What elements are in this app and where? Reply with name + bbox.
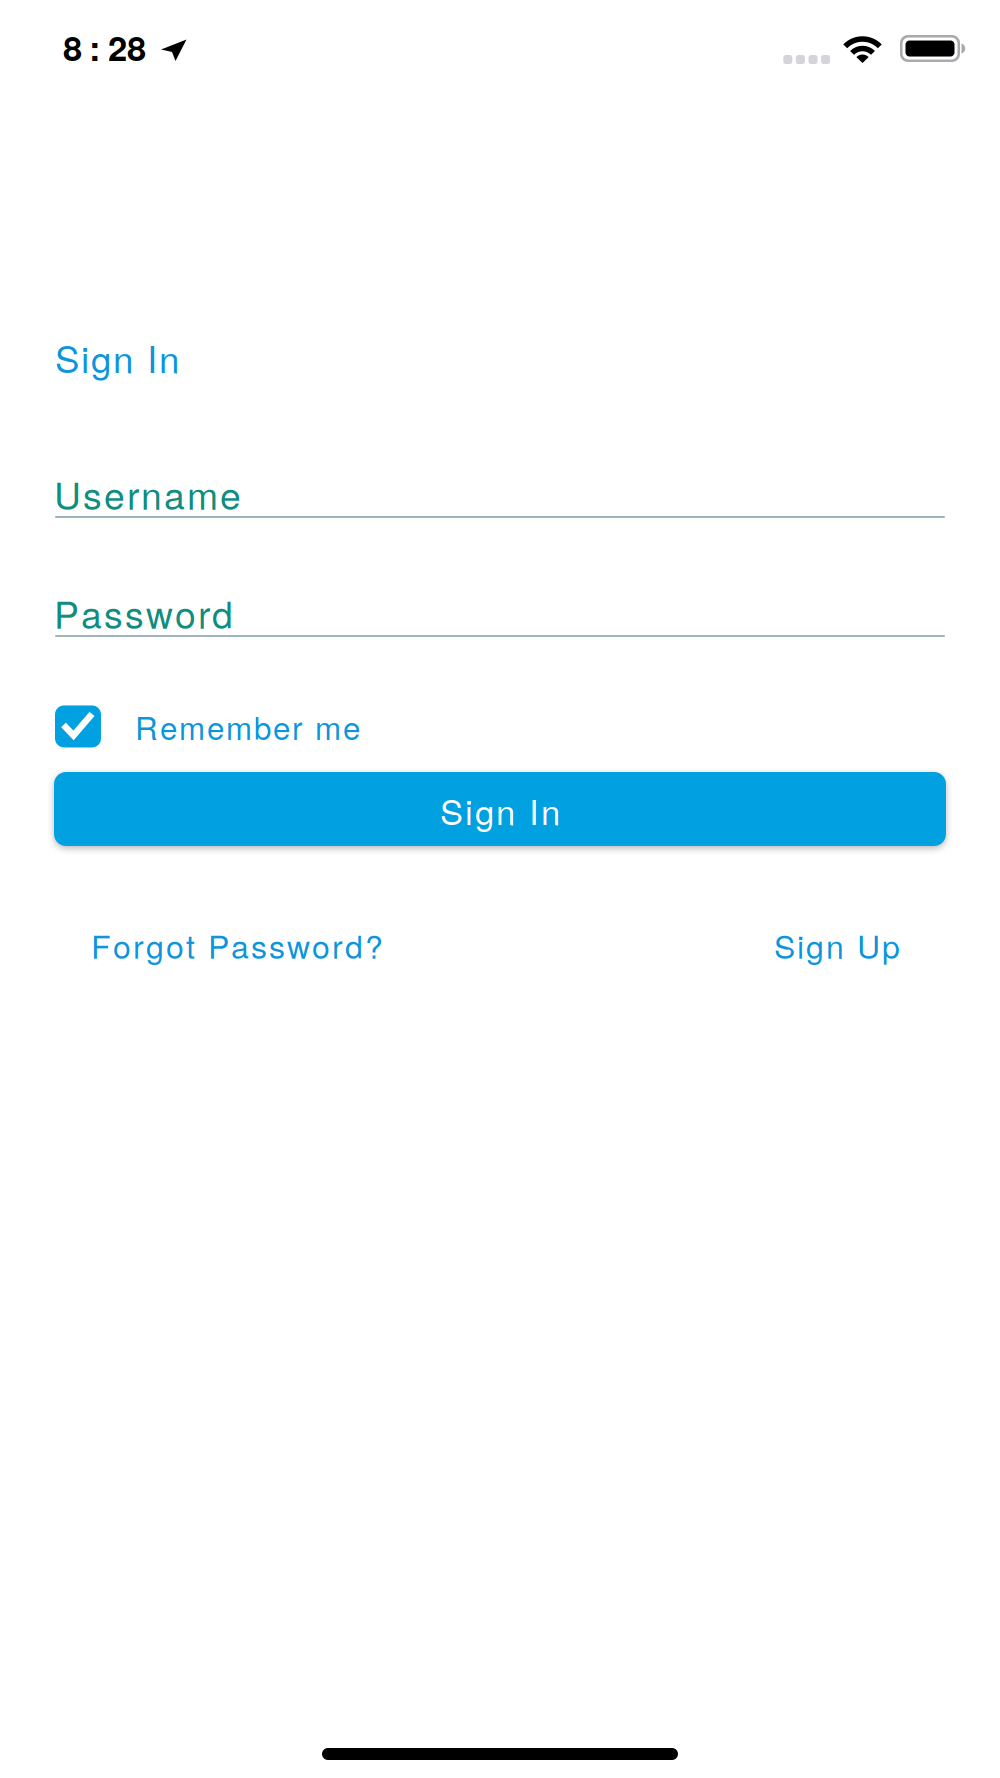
button[interactable]: Password xyxy=(54,586,945,637)
button[interactable]: F o r g o t P a s s w o r d ? xyxy=(91,922,383,968)
staticText: F o r g o t P a s s w o r d ? xyxy=(91,922,383,968)
staticText: S i g n I n xyxy=(55,331,179,383)
staticText: 8 : 28 xyxy=(63,22,146,72)
staticText: S i g n U p xyxy=(774,922,900,968)
staticText: U s e r n a m e xyxy=(54,467,241,520)
button[interactable]: R e m e m b e r m e xyxy=(55,704,360,749)
staticText: S i g n I n xyxy=(440,785,560,835)
button[interactable]: S i g n U p xyxy=(774,922,900,968)
staticText: P a s s w o r d xyxy=(54,586,233,639)
staticText: R e m e m b e r m e xyxy=(135,704,360,749)
button[interactable]: S i g n I n xyxy=(54,772,946,846)
button[interactable]: Username xyxy=(54,467,945,518)
